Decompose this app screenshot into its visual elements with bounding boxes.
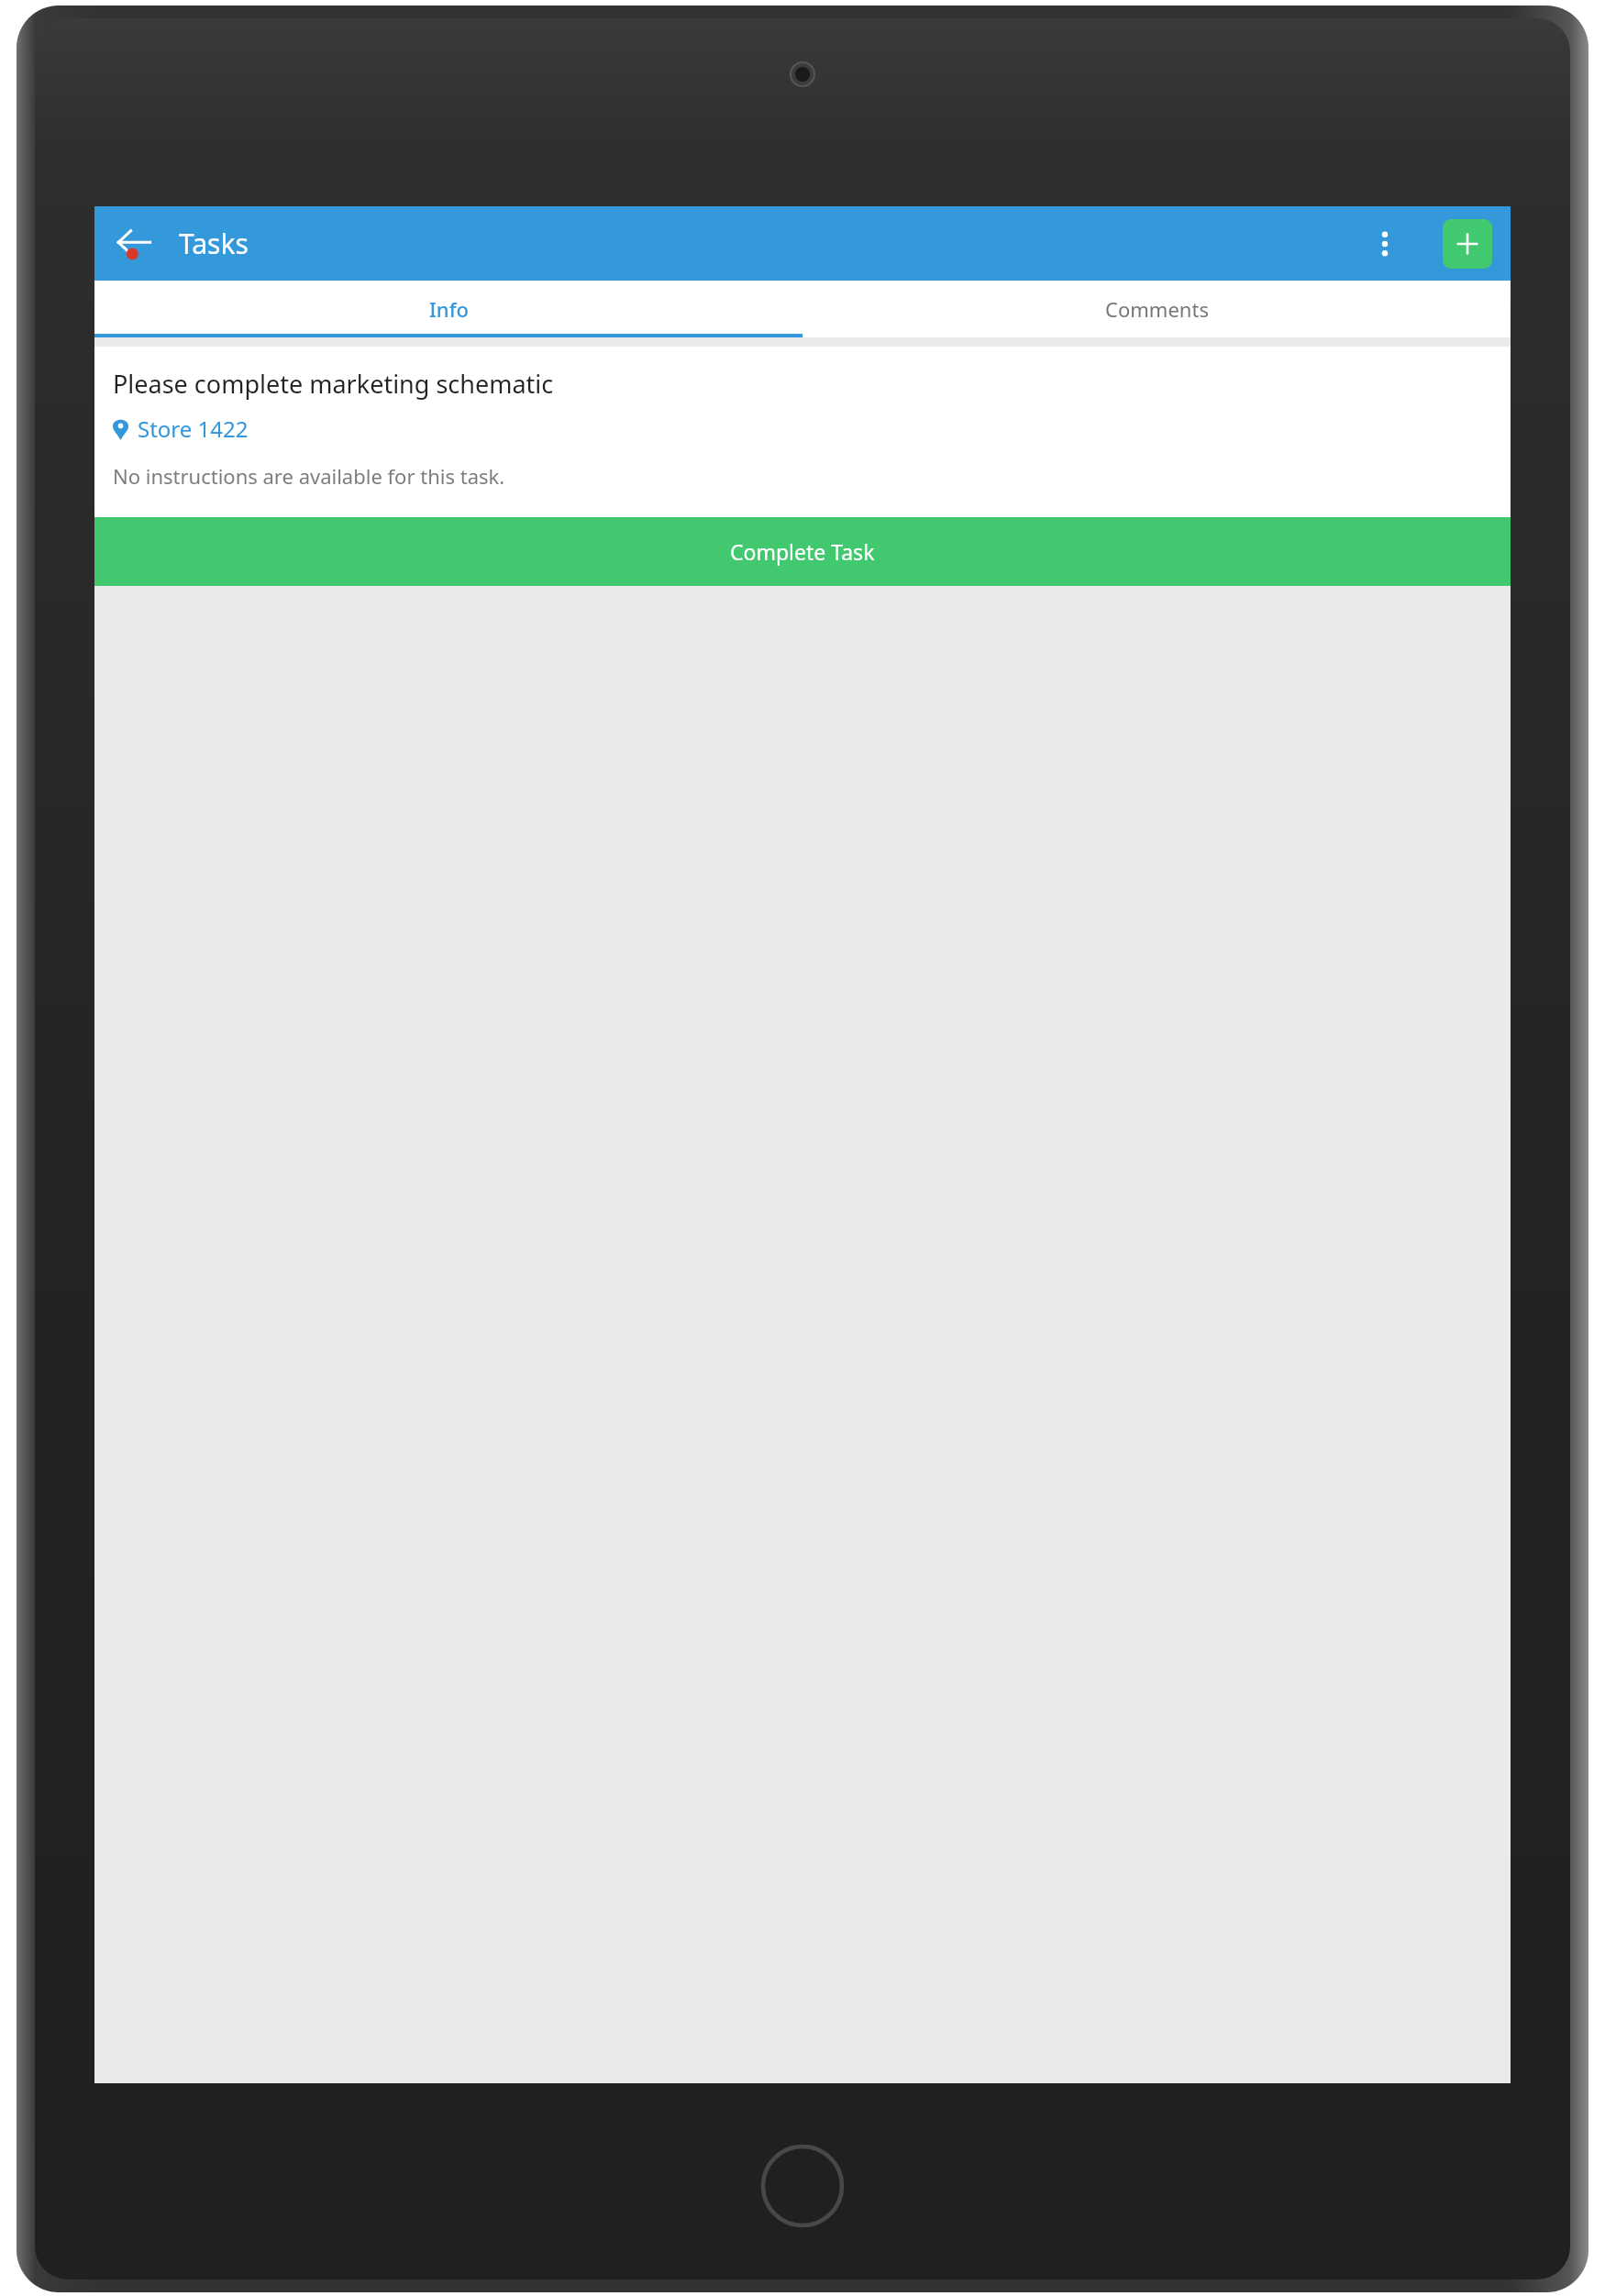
button[interactable]: Back: [107, 217, 160, 270]
button[interactable]: Add task: [1443, 219, 1492, 269]
button[interactable]: More options: [1358, 217, 1411, 270]
button[interactable]: Complete Task: [94, 517, 1511, 586]
staticText: Info: [429, 295, 469, 323]
staticText: No instructions are available for this t…: [113, 462, 505, 490]
staticText: Store 1422: [138, 414, 249, 444]
staticText: Please complete marketing schematic: [113, 367, 554, 401]
staticText: Complete Task: [730, 537, 875, 566]
staticText: Comments: [1105, 295, 1209, 323]
button[interactable]: Store 1422: [113, 414, 249, 444]
staticText: Tasks: [179, 225, 249, 262]
button[interactable]: Info: [94, 281, 802, 337]
button[interactable]: Comments: [802, 281, 1511, 337]
